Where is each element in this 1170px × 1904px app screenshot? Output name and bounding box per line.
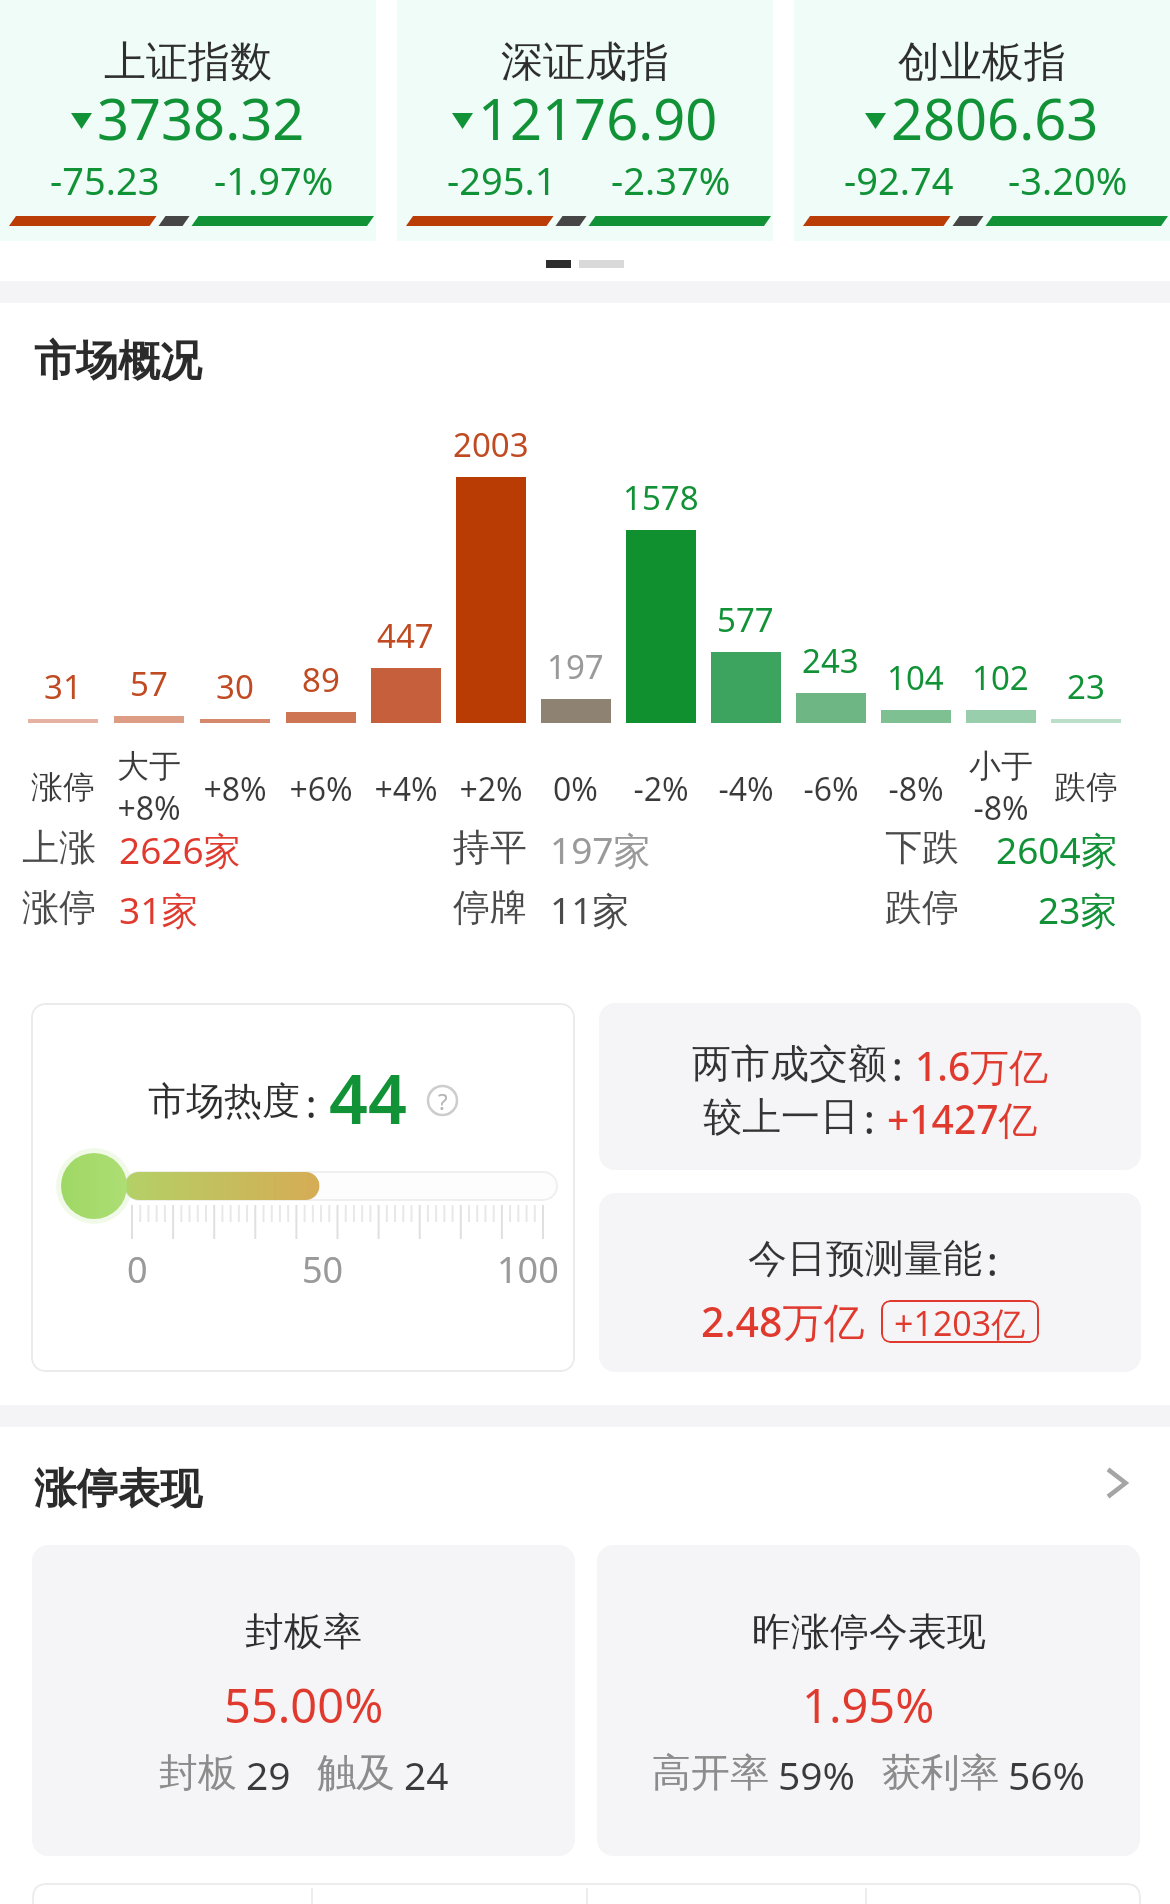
staticText: 24 (404, 1748, 449, 1801)
staticText: -2% (633, 767, 689, 811)
staticText: 59% (778, 1748, 856, 1801)
staticText: 100 (497, 1245, 559, 1294)
staticText: 31 (44, 664, 82, 709)
staticText: +4% (374, 767, 438, 811)
staticText: 涨停 (22, 884, 96, 931)
staticText: 44 (329, 1051, 407, 1144)
staticText: 深证成指 (501, 36, 669, 89)
staticText: 较上一日 (703, 1092, 859, 1141)
staticText: +8% (203, 767, 267, 811)
staticText: 30 (216, 664, 254, 709)
staticText: 封板 (159, 1748, 237, 1797)
staticText: 0% (553, 767, 598, 811)
staticText: 市场概况 (34, 335, 202, 388)
staticText: 447 (377, 613, 434, 658)
staticText: ? (438, 1086, 448, 1116)
staticText: 创业板指 (898, 36, 1066, 89)
staticText: 3738.32 (97, 80, 305, 156)
button[interactable]: 两市成交额 (599, 1003, 1141, 1170)
staticText: 下跌 (885, 824, 959, 871)
staticText: 大于 (117, 746, 181, 786)
button[interactable]: 市场热度 (31, 1003, 575, 1372)
staticText: 29 (246, 1748, 291, 1801)
button[interactable]: 封板率 (32, 1545, 575, 1856)
staticText: : (987, 1234, 998, 1287)
staticText: 56% (1008, 1748, 1086, 1801)
staticText: 封板率 (245, 1607, 362, 1656)
staticText: -8% (888, 767, 944, 811)
staticText: 上涨 (22, 824, 96, 871)
staticText: 1.6万亿 (915, 1039, 1049, 1092)
staticText: 11家 (550, 884, 630, 935)
staticText: 55.00% (224, 1673, 384, 1737)
staticText: -2.37% (611, 154, 731, 206)
staticText: : (864, 1092, 875, 1145)
staticText: 104 (887, 655, 944, 700)
staticText: 上证指数 (104, 36, 272, 89)
staticText: +2% (459, 767, 523, 811)
staticText: -92.74 (844, 154, 954, 206)
staticText: 跌停 (1054, 767, 1118, 807)
staticText: 12176.90 (478, 80, 718, 156)
staticText: -6% (803, 767, 859, 811)
other: More (1096, 1463, 1136, 1503)
staticText: 23家 (1038, 884, 1118, 935)
staticText: 停牌 (453, 884, 527, 931)
button[interactable]: 上证指数 (0, 0, 376, 241)
staticText: +6% (289, 767, 353, 811)
staticText: 涨停 (31, 767, 95, 807)
button[interactable]: 今日预测量能 (599, 1193, 1141, 1372)
staticText: 持平 (453, 824, 527, 871)
staticText: 2604家 (996, 824, 1118, 875)
button[interactable]: 深证成指 (397, 0, 773, 241)
staticText: -3.20% (1008, 154, 1128, 206)
staticText: 市场热度 (148, 1077, 300, 1125)
staticText: 197家 (550, 824, 651, 875)
staticText: 涨停表现 (34, 1463, 202, 1516)
button[interactable]: 涨停表现 (0, 1427, 1170, 1537)
staticText: +1427亿 (887, 1092, 1038, 1145)
staticText: 102 (972, 655, 1029, 700)
button[interactable]: 昨涨停今表现 (597, 1545, 1140, 1856)
staticText: +8% (117, 786, 181, 830)
staticText: 577 (717, 597, 774, 642)
staticText: 2.48万亿 (701, 1293, 865, 1349)
staticText: 获利率 (882, 1748, 999, 1797)
staticText: 触及 (317, 1748, 395, 1797)
staticText: 23 (1067, 664, 1105, 709)
staticText: -8% (973, 786, 1029, 830)
staticText: 89 (302, 657, 340, 702)
staticText: 今日预测量能 (748, 1234, 982, 1283)
staticText: 57 (130, 661, 168, 706)
staticText: 高开率 (652, 1748, 769, 1797)
staticText: -75.23 (50, 154, 160, 206)
staticText: : (892, 1039, 903, 1092)
staticText: 跌停 (885, 884, 959, 931)
staticText: 197 (547, 644, 604, 689)
button[interactable]: 市场热度说明 (427, 1085, 458, 1116)
staticText: 1.95% (802, 1673, 935, 1737)
staticText: 2626家 (119, 824, 241, 875)
staticText: +1203亿 (894, 1300, 1026, 1343)
staticText: 小于 (969, 746, 1033, 786)
staticText: -1.97% (214, 154, 334, 206)
staticText: : (306, 1077, 317, 1129)
staticText: 两市成交额 (692, 1039, 887, 1088)
staticText: 0 (127, 1245, 148, 1294)
staticText: 2003 (453, 422, 529, 467)
button[interactable]: 创业板指 (794, 0, 1170, 241)
staticText: 50 (302, 1245, 344, 1294)
staticText: -295.1 (447, 154, 557, 206)
staticText: 31家 (119, 884, 199, 935)
staticText: -4% (718, 767, 774, 811)
staticText: 1578 (623, 475, 699, 520)
staticText: 2806.63 (891, 80, 1099, 156)
staticText: 昨涨停今表现 (752, 1607, 986, 1656)
staticText: 243 (802, 638, 859, 683)
